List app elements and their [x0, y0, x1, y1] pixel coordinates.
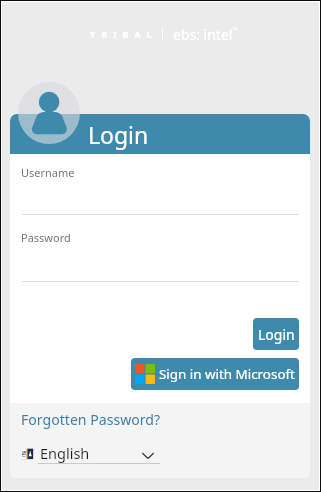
other: Language [20, 447, 34, 461]
staticText: English [40, 443, 90, 463]
button[interactable]: Login [253, 318, 299, 350]
staticText: Login [88, 119, 149, 150]
staticText: ebs: intel [173, 25, 233, 44]
button[interactable]: Forgotten Password? [21, 410, 161, 429]
staticText: Username [21, 165, 75, 180]
staticText: TRIBAL [90, 28, 158, 40]
staticText: Password [21, 230, 71, 245]
staticText: Sign in with Microsoft [159, 365, 295, 383]
staticText: Login [258, 325, 295, 344]
button[interactable]: Sign in with Microsoft [131, 358, 299, 390]
staticText: ™ [233, 26, 238, 34]
button[interactable]: Language [18, 442, 168, 464]
